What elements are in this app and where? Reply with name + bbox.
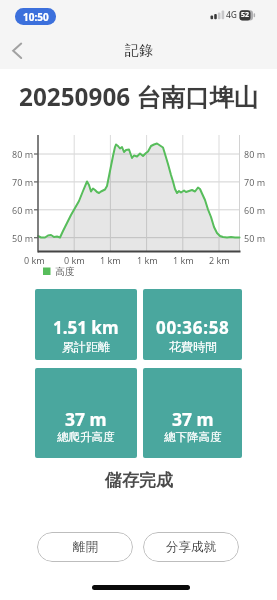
staticText: 70 m — [244, 176, 266, 188]
staticText: 總爬升高度 — [57, 430, 115, 444]
staticText: 2 km — [209, 254, 230, 266]
staticText: 60 m — [12, 204, 34, 216]
button[interactable]: 分享成就 — [143, 532, 239, 562]
staticText: 0 km — [24, 254, 45, 266]
staticText: 4G — [226, 9, 238, 21]
staticText: 花費時間 — [169, 339, 217, 354]
staticText: 儲存完成 — [105, 470, 173, 491]
staticText: 60 m — [244, 204, 266, 216]
staticText: 37 m — [172, 407, 214, 431]
staticText: 分享成就 — [166, 539, 216, 555]
staticText: 總下降高度 — [164, 430, 222, 444]
staticText: 記錄 — [125, 42, 153, 60]
staticText: 37 m — [65, 407, 107, 431]
button[interactable] — [143, 368, 242, 458]
staticText: 1 km — [173, 254, 194, 266]
staticText: 00:36:58 — [156, 316, 230, 339]
staticText: 10:50 — [23, 10, 49, 24]
staticText: 50 m — [12, 232, 34, 244]
staticText: 80 m — [12, 148, 34, 160]
staticText: 高度 — [55, 265, 75, 278]
staticText: 80 m — [244, 148, 266, 160]
staticText: 50 m — [244, 232, 266, 244]
button[interactable] — [35, 368, 137, 458]
staticText: 20250906 台南口埤山 — [19, 80, 258, 110]
staticText: 52 — [241, 10, 250, 20]
button[interactable] — [6, 37, 36, 64]
staticText: 0 km — [64, 254, 85, 266]
staticText: 1 km — [137, 254, 158, 266]
staticText: 離開 — [73, 539, 98, 555]
staticText: 1 km — [100, 254, 121, 266]
button[interactable] — [35, 289, 137, 360]
staticText: 1.51 km — [53, 316, 119, 339]
staticText: 70 m — [12, 176, 34, 188]
button[interactable]: 離開 — [37, 532, 133, 562]
staticText: 累計距離 — [62, 339, 110, 354]
button[interactable] — [143, 289, 242, 360]
